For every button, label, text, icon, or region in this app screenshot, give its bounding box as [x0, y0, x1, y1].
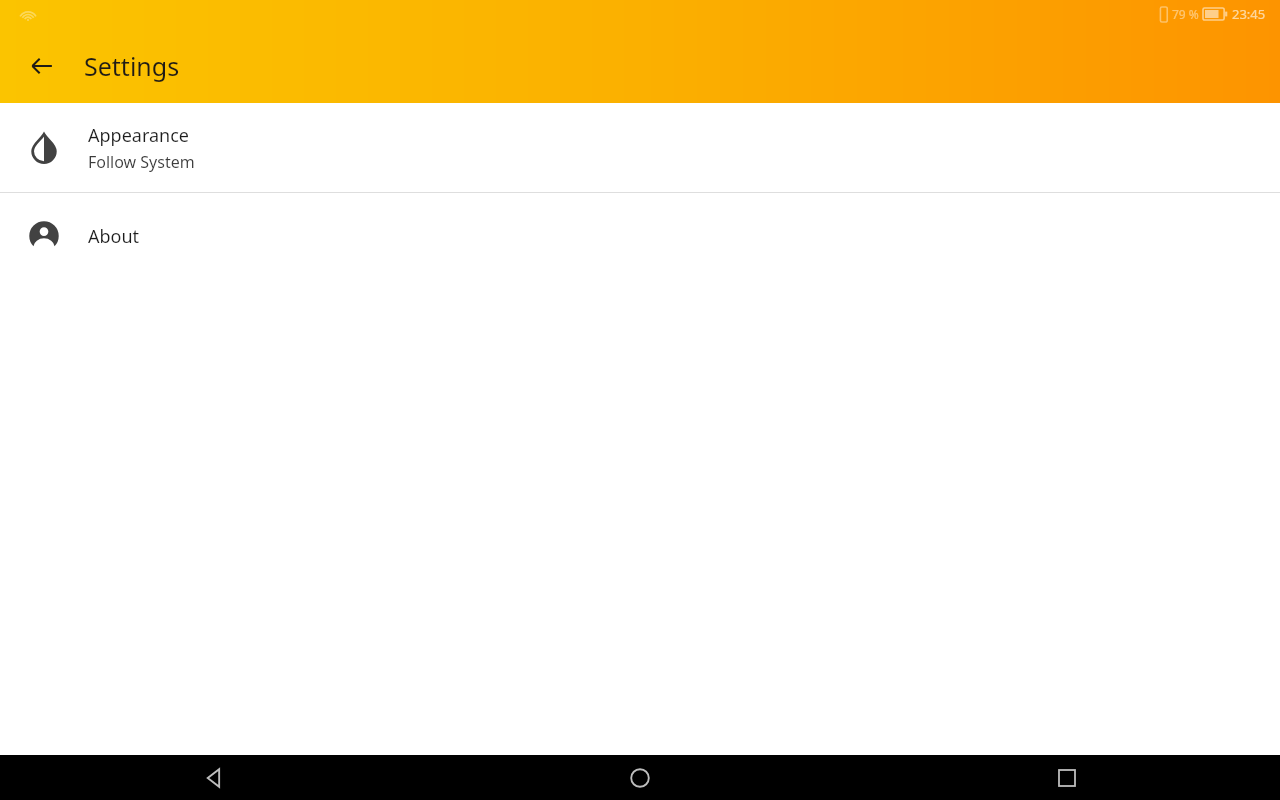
staticText: Follow System: [88, 151, 195, 173]
staticText: Appearance: [88, 123, 189, 148]
staticText: Settings: [84, 49, 180, 83]
button[interactable]: Appearance: [0, 103, 1280, 192]
button[interactable]: Home: [426, 755, 853, 800]
button[interactable]: About: [0, 193, 1280, 279]
button[interactable]: Recent apps: [853, 755, 1280, 800]
button[interactable]: Back: [18, 42, 66, 90]
staticText: 23:45: [1232, 5, 1266, 23]
staticText: About: [88, 224, 140, 249]
button[interactable]: Back: [0, 755, 426, 800]
staticText: 79 %: [1172, 6, 1199, 22]
